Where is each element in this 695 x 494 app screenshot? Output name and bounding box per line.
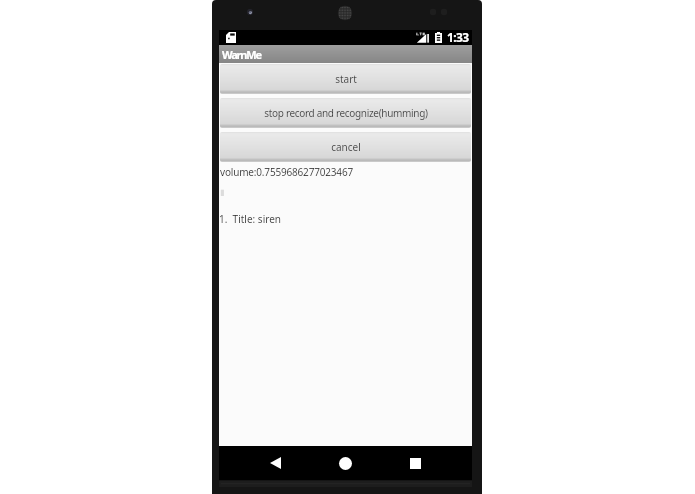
button[interactable]: start <box>220 64 471 94</box>
staticText: stop record and recognize(humming) <box>264 106 428 120</box>
staticText: ▮ <box>220 188 225 197</box>
button[interactable]: Recent apps <box>393 446 437 480</box>
staticText: start <box>335 72 357 86</box>
button[interactable]: stop record and recognize(humming) <box>220 98 471 128</box>
button[interactable]: Back <box>253 446 297 480</box>
button[interactable]: Home <box>323 446 367 480</box>
staticText: volume:0.7559686277023467 <box>220 165 353 179</box>
staticText: WarnMe <box>222 47 261 62</box>
staticText: 1. Title: siren <box>219 212 281 226</box>
staticText: cancel <box>331 140 361 154</box>
button[interactable]: cancel <box>220 132 471 162</box>
staticText: 1:33 <box>447 29 469 44</box>
